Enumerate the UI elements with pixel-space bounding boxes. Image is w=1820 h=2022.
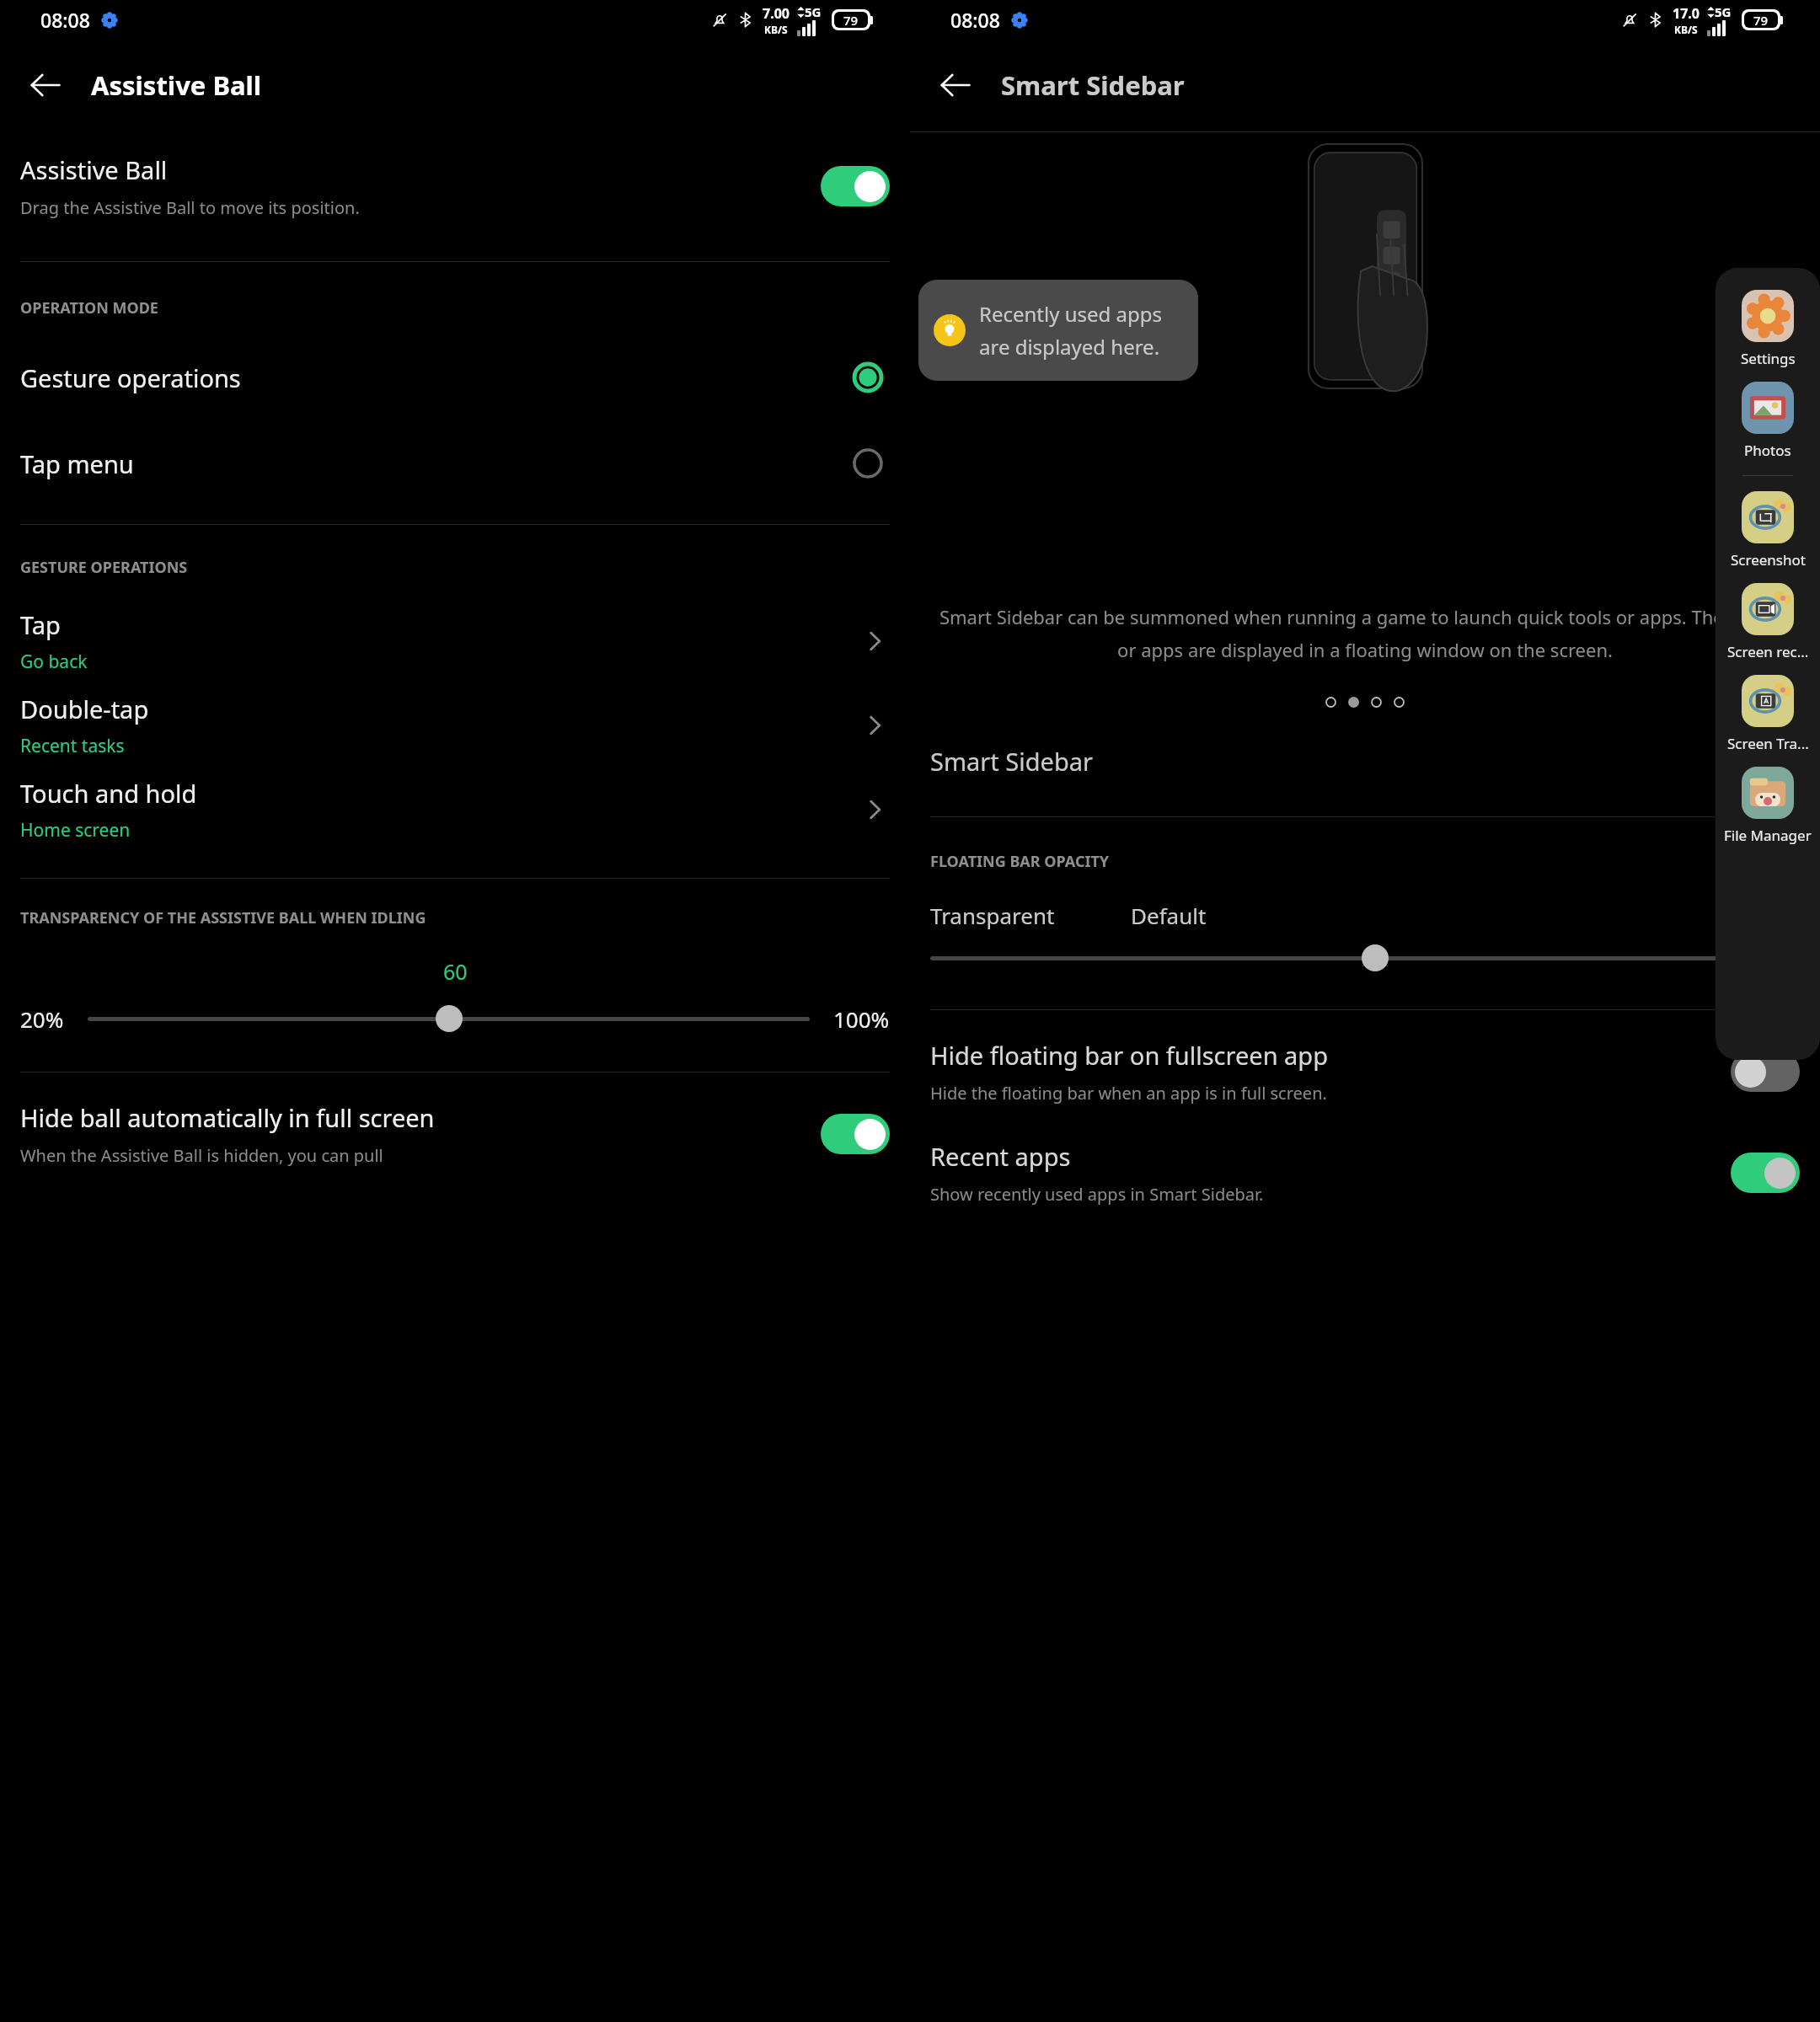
button[interactable]: Back bbox=[17, 56, 74, 114]
staticText: TRANSPARENCY OF THE ASSISTIVE BALL WHEN … bbox=[20, 907, 426, 928]
button[interactable]: Assistive Ball bbox=[0, 153, 910, 219]
staticText: OPERATION MODE bbox=[20, 297, 158, 318]
staticText: KB/S bbox=[764, 23, 788, 36]
staticText: 5G bbox=[1715, 3, 1732, 20]
staticText: 79 bbox=[1753, 12, 1769, 28]
staticText: Settings bbox=[1741, 349, 1796, 368]
staticText: GESTURE OPERATIONS bbox=[20, 557, 188, 578]
staticText: Screen rec... bbox=[1727, 642, 1809, 661]
staticText: Screen Tra... bbox=[1727, 734, 1809, 753]
staticText: Recent tasks bbox=[20, 734, 125, 758]
button[interactable]: Touch and hold bbox=[0, 777, 910, 842]
staticText: Hide ball automatically in full screen bbox=[20, 1101, 435, 1134]
staticText: Smart Sidebar bbox=[1001, 67, 1185, 103]
staticText: Hide the floating bar when an app is in … bbox=[930, 1082, 1327, 1105]
button[interactable]: File Manager bbox=[1716, 760, 1820, 852]
staticText: 20% bbox=[20, 1004, 64, 1034]
staticText: 79 bbox=[843, 12, 859, 28]
staticText: Home screen bbox=[20, 818, 131, 842]
button[interactable]: Select bbox=[844, 440, 891, 487]
button[interactable]: Screen Tra... bbox=[1716, 668, 1820, 760]
staticText: File Manager bbox=[1724, 826, 1812, 845]
staticText: Double-tap bbox=[20, 693, 149, 725]
button[interactable]: Double-tap bbox=[0, 693, 910, 758]
staticText: 08:08 bbox=[40, 7, 90, 33]
button[interactable]: Hide floating bar on fullscreen app bbox=[910, 1039, 1820, 1105]
button[interactable]: Settings bbox=[1716, 283, 1820, 375]
staticText: Go back bbox=[20, 650, 88, 674]
staticText: 7.00 bbox=[763, 4, 790, 23]
button[interactable]: Back bbox=[927, 56, 984, 114]
staticText: Transparent bbox=[930, 901, 1055, 930]
staticText: 60 bbox=[443, 957, 468, 986]
button[interactable]: On bbox=[821, 166, 890, 206]
button[interactable]: Photos bbox=[1716, 375, 1820, 467]
staticText: Smart Sidebar can be summoned when runni… bbox=[934, 604, 1796, 663]
staticText: Screenshot bbox=[1731, 550, 1806, 570]
staticText: Recently used apps are displayed here. bbox=[979, 300, 1183, 361]
staticText: Gesture operations bbox=[20, 361, 844, 394]
button[interactable]: Smart Sidebar bbox=[910, 745, 1820, 778]
button[interactable]: Hide ball automatically in full screen bbox=[0, 1101, 910, 1167]
staticText: Recent apps bbox=[930, 1140, 1071, 1173]
staticText: 17.0 bbox=[1673, 4, 1700, 23]
button[interactable]: Slider bbox=[64, 998, 833, 1040]
staticText: Tap bbox=[20, 608, 61, 641]
button[interactable]: Off bbox=[1731, 1051, 1800, 1092]
staticText: Tap menu bbox=[20, 447, 844, 480]
staticText: Assistive Ball bbox=[91, 67, 262, 103]
button[interactable]: On bbox=[1731, 1153, 1800, 1193]
staticText: Default bbox=[1131, 901, 1207, 930]
staticText: 08:08 bbox=[950, 7, 1000, 33]
staticText: Show recently used apps in Smart Sidebar… bbox=[930, 1183, 1264, 1206]
staticText: Hide floating bar on fullscreen app bbox=[930, 1039, 1329, 1072]
staticText: Touch and hold bbox=[20, 777, 197, 810]
button[interactable]: Tap menu bbox=[0, 440, 910, 487]
button[interactable]: Select bbox=[844, 354, 891, 401]
staticText: When the Assistive Ball is hidden, you c… bbox=[20, 1144, 383, 1167]
button[interactable]: Screen rec... bbox=[1716, 576, 1820, 668]
staticText: KB/S bbox=[1674, 23, 1698, 36]
staticText: Drag the Assistive Ball to move its posi… bbox=[20, 196, 360, 219]
button[interactable]: Screenshot bbox=[1716, 484, 1820, 576]
button[interactable]: On bbox=[821, 1114, 890, 1154]
staticText: FLOATING BAR OPACITY bbox=[930, 851, 1110, 872]
button[interactable]: Slider bbox=[910, 937, 1820, 979]
staticText: Photos bbox=[1744, 441, 1791, 460]
button[interactable]: Recent apps bbox=[910, 1140, 1820, 1206]
staticText: Smart Sidebar bbox=[930, 745, 1800, 778]
button[interactable]: Tap bbox=[0, 608, 910, 674]
button[interactable]: Gesture operations bbox=[0, 354, 910, 401]
staticText: 100% bbox=[833, 1004, 890, 1034]
staticText: Assistive Ball bbox=[20, 153, 168, 186]
staticText: 5G bbox=[805, 3, 822, 20]
